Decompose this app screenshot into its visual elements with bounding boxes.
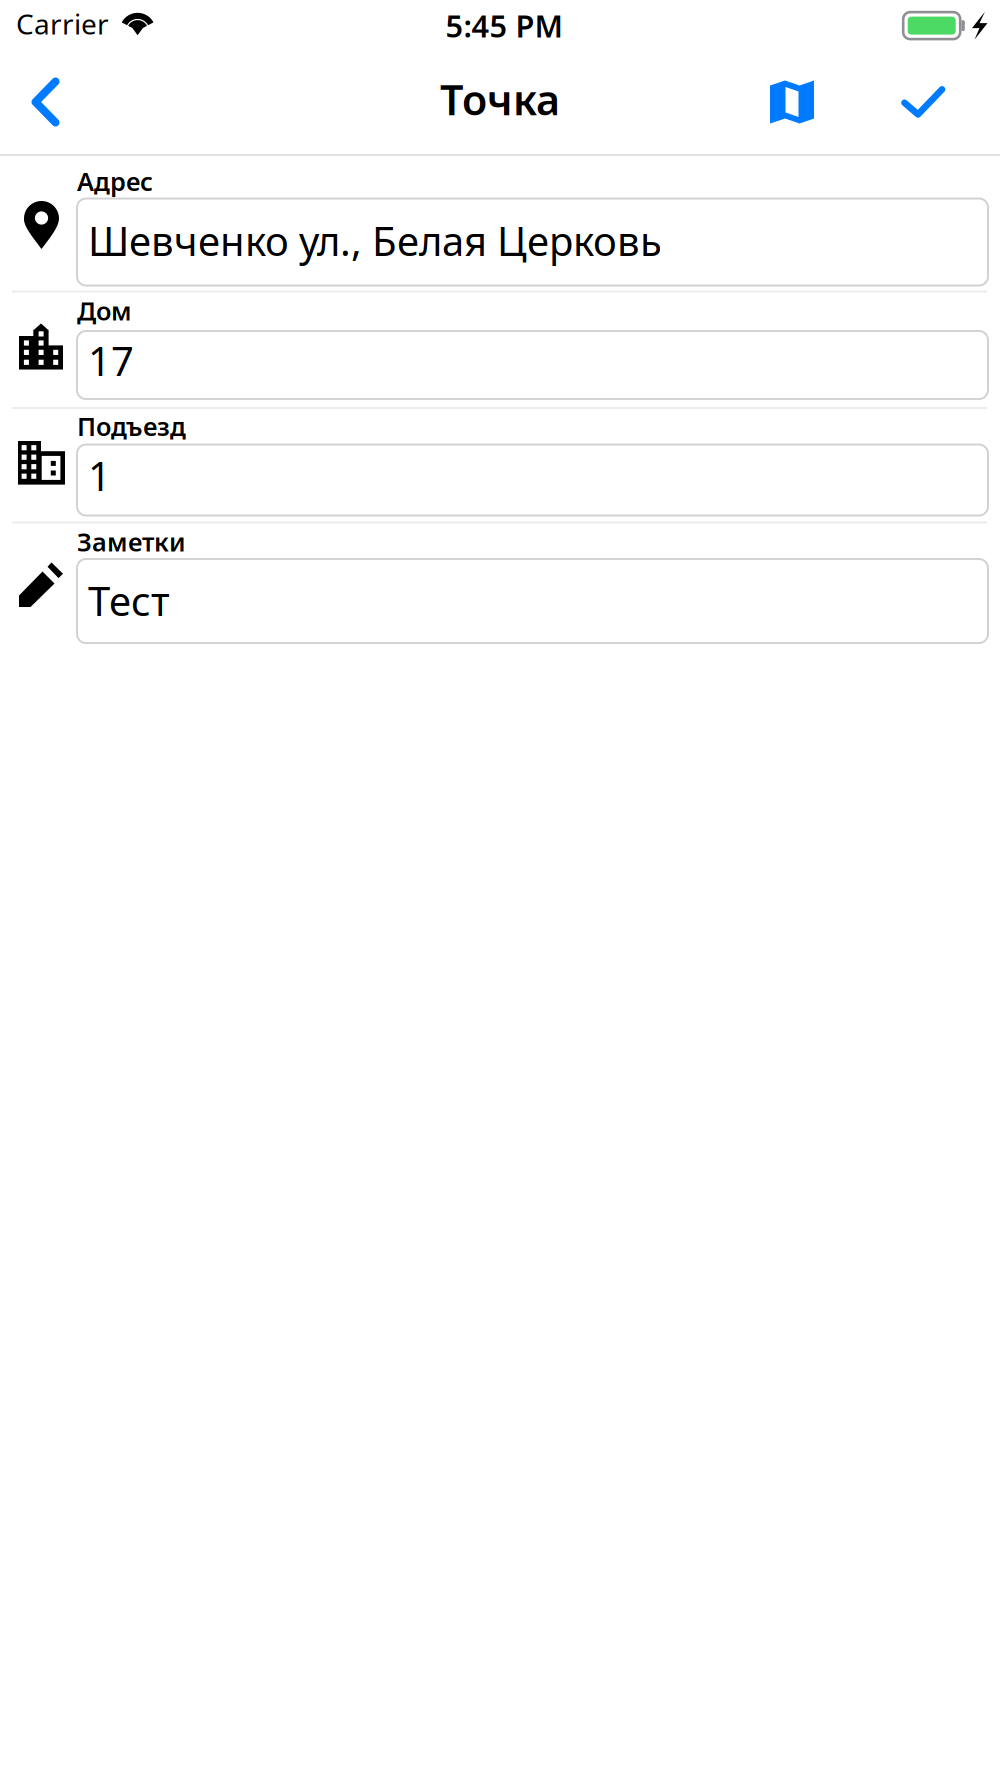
staticText: 1 xyxy=(88,448,111,503)
staticText: Адрес xyxy=(77,164,153,198)
button[interactable]: Show on map xyxy=(746,50,856,154)
staticText: 5:45 PM xyxy=(445,5,562,46)
staticText: Точка xyxy=(440,71,560,127)
staticText: Carrier xyxy=(16,5,109,43)
staticText: 17 xyxy=(88,333,134,388)
button[interactable]: Save xyxy=(856,50,1000,154)
staticText: Заметки xyxy=(77,524,186,559)
staticText: Дом xyxy=(77,293,132,328)
staticText: Шевченко ул., Белая Церковь xyxy=(88,213,662,268)
staticText: Подъезд xyxy=(77,409,186,443)
staticText: Тест xyxy=(88,573,170,628)
button[interactable]: Back xyxy=(0,50,102,154)
